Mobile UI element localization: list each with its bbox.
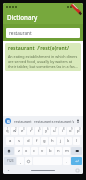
staticText: c <box>33 148 36 154</box>
staticText: q <box>6 128 9 134</box>
button[interactable]: k <box>65 137 72 145</box>
button[interactable]: v <box>39 147 46 155</box>
staticText: . <box>66 159 68 164</box>
button[interactable]: f <box>33 137 40 145</box>
staticText: restaurant /ˈrest(ə)rənt/ <box>8 45 70 52</box>
staticText: r <box>30 128 32 134</box>
button[interactable]: z <box>15 147 22 155</box>
button[interactable]: Search <box>5 118 11 124</box>
staticText: 8 <box>63 127 65 131</box>
button[interactable]: b <box>47 147 54 155</box>
staticText: o <box>69 128 72 134</box>
staticText: 7 <box>55 127 57 131</box>
button[interactable]: restaurant /ˈrest(ə)rənt/ <box>5 43 81 71</box>
staticText: An eating establishment in which diners … <box>8 54 78 69</box>
staticText: w <box>13 128 17 134</box>
staticText: n <box>57 148 60 154</box>
staticText: v <box>41 148 44 154</box>
button[interactable]: 9 <box>67 127 74 135</box>
button[interactable]: n <box>55 147 62 155</box>
staticText: l <box>76 138 78 144</box>
staticText: i <box>62 128 64 134</box>
staticText: k <box>67 138 70 144</box>
staticText: y <box>45 128 48 134</box>
staticText: 1 <box>7 127 9 131</box>
staticText: , <box>20 159 22 164</box>
button[interactable]: a <box>6 137 14 145</box>
staticText: t <box>38 128 40 134</box>
staticText: z <box>18 148 20 154</box>
button[interactable]: Backspace <box>71 147 82 155</box>
button[interactable]: , <box>17 157 24 165</box>
button[interactable]: Hide keyboard <box>7 169 10 172</box>
button[interactable]: g <box>41 137 48 145</box>
button[interactable]: Shift <box>4 147 14 155</box>
staticText: 0 <box>79 127 81 131</box>
button[interactable]: l <box>73 137 80 145</box>
staticText: f <box>36 138 38 144</box>
button[interactable]: 4 <box>27 127 34 135</box>
staticText: s <box>18 138 21 144</box>
staticText: restaurant's <box>54 119 75 124</box>
button[interactable]: Emoji <box>25 157 32 165</box>
button[interactable]: d <box>24 137 32 145</box>
staticText: Dictionary <box>7 13 38 21</box>
button[interactable]: restaurant <box>13 116 33 126</box>
button[interactable]: 1 <box>4 127 10 135</box>
button[interactable]: restaurant's <box>54 116 75 126</box>
button[interactable]: m <box>63 147 70 155</box>
staticText: u <box>53 128 56 134</box>
button[interactable]: Keyboard settings <box>76 169 79 172</box>
button[interactable]: 7 <box>51 127 58 135</box>
button[interactable]: restaurants <box>33 116 54 126</box>
staticText: m <box>65 148 69 154</box>
button[interactable]: 8 <box>59 127 66 135</box>
staticText: 2 <box>15 127 17 131</box>
staticText: p <box>77 128 80 134</box>
button[interactable]: h <box>49 137 56 145</box>
staticText: e <box>21 128 24 134</box>
staticText: 3 <box>23 127 25 131</box>
staticText: 9 <box>71 127 73 131</box>
staticText: d <box>27 138 30 144</box>
button[interactable]: 2 <box>11 127 18 135</box>
button[interactable]: ?123 <box>4 157 16 165</box>
staticText: g <box>43 138 46 144</box>
staticText: j <box>60 138 62 144</box>
button[interactable]: restaurant <box>6 28 80 38</box>
staticText: 5 <box>39 127 41 131</box>
button[interactable]: Enter <box>71 157 82 165</box>
staticText: 6 <box>47 127 49 131</box>
staticText: b <box>49 148 52 154</box>
staticText: h <box>51 138 54 144</box>
staticText: restaurant <box>14 119 32 124</box>
button[interactable]: j <box>57 137 64 145</box>
button[interactable]: 5 <box>35 127 42 135</box>
staticText: restaurants <box>34 119 54 124</box>
staticText: x <box>25 148 28 154</box>
button[interactable]: Voice input <box>75 116 81 126</box>
button[interactable]: 0 <box>75 127 82 135</box>
staticText: restaurant <box>9 30 32 36</box>
staticText: ?123 <box>7 159 14 163</box>
staticText: G <box>7 119 10 124</box>
button[interactable]: 3 <box>19 127 26 135</box>
button[interactable]: 6 <box>43 127 50 135</box>
button[interactable]: Edit <box>69 3 83 17</box>
staticText: 4 <box>31 127 33 131</box>
button[interactable]: x <box>23 147 30 155</box>
staticText: a <box>9 138 12 144</box>
button[interactable]: s <box>15 137 23 145</box>
button[interactable]: c <box>31 147 38 155</box>
button[interactable]: . <box>63 157 70 165</box>
